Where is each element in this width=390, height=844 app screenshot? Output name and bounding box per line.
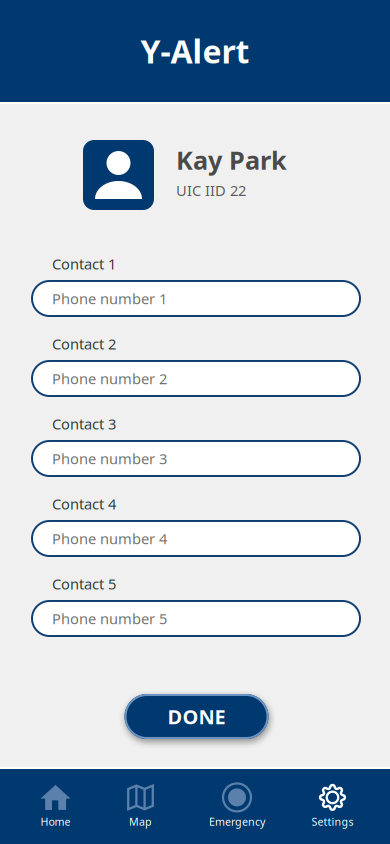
button[interactable]: Settings bbox=[311, 784, 353, 829]
button[interactable]: Home bbox=[40, 784, 70, 829]
staticText: Map bbox=[129, 814, 152, 829]
button[interactable]: Emergency bbox=[209, 784, 265, 829]
staticText: Home bbox=[40, 814, 70, 829]
button[interactable]: DONE bbox=[124, 694, 268, 739]
staticText: UIC IID 22 bbox=[176, 181, 246, 200]
button[interactable]: Phone number 4 bbox=[31, 520, 361, 557]
staticText: Settings bbox=[311, 814, 353, 829]
button[interactable]: Map bbox=[127, 784, 154, 829]
staticText: Y-Alert bbox=[140, 30, 249, 72]
staticText: Contact 1 bbox=[52, 254, 116, 273]
staticText: Kay Park bbox=[176, 143, 287, 177]
button[interactable]: Phone number 5 bbox=[31, 600, 361, 637]
staticText: Phone number 4 bbox=[52, 529, 167, 548]
button[interactable]: Phone number 2 bbox=[31, 360, 361, 397]
staticText: Contact 4 bbox=[52, 494, 116, 513]
staticText: Phone number 2 bbox=[52, 369, 167, 388]
staticText: Phone number 5 bbox=[52, 609, 167, 628]
staticText: Phone number 1 bbox=[52, 289, 167, 308]
staticText: Emergency bbox=[209, 814, 265, 829]
button[interactable]: Phone number 1 bbox=[31, 280, 361, 317]
button[interactable]: Phone number 3 bbox=[31, 440, 361, 477]
staticText: Contact 5 bbox=[52, 574, 116, 593]
staticText: Contact 2 bbox=[52, 334, 116, 353]
staticText: Phone number 3 bbox=[52, 449, 167, 468]
staticText: Contact 3 bbox=[52, 414, 116, 433]
staticText: DONE bbox=[167, 703, 225, 730]
